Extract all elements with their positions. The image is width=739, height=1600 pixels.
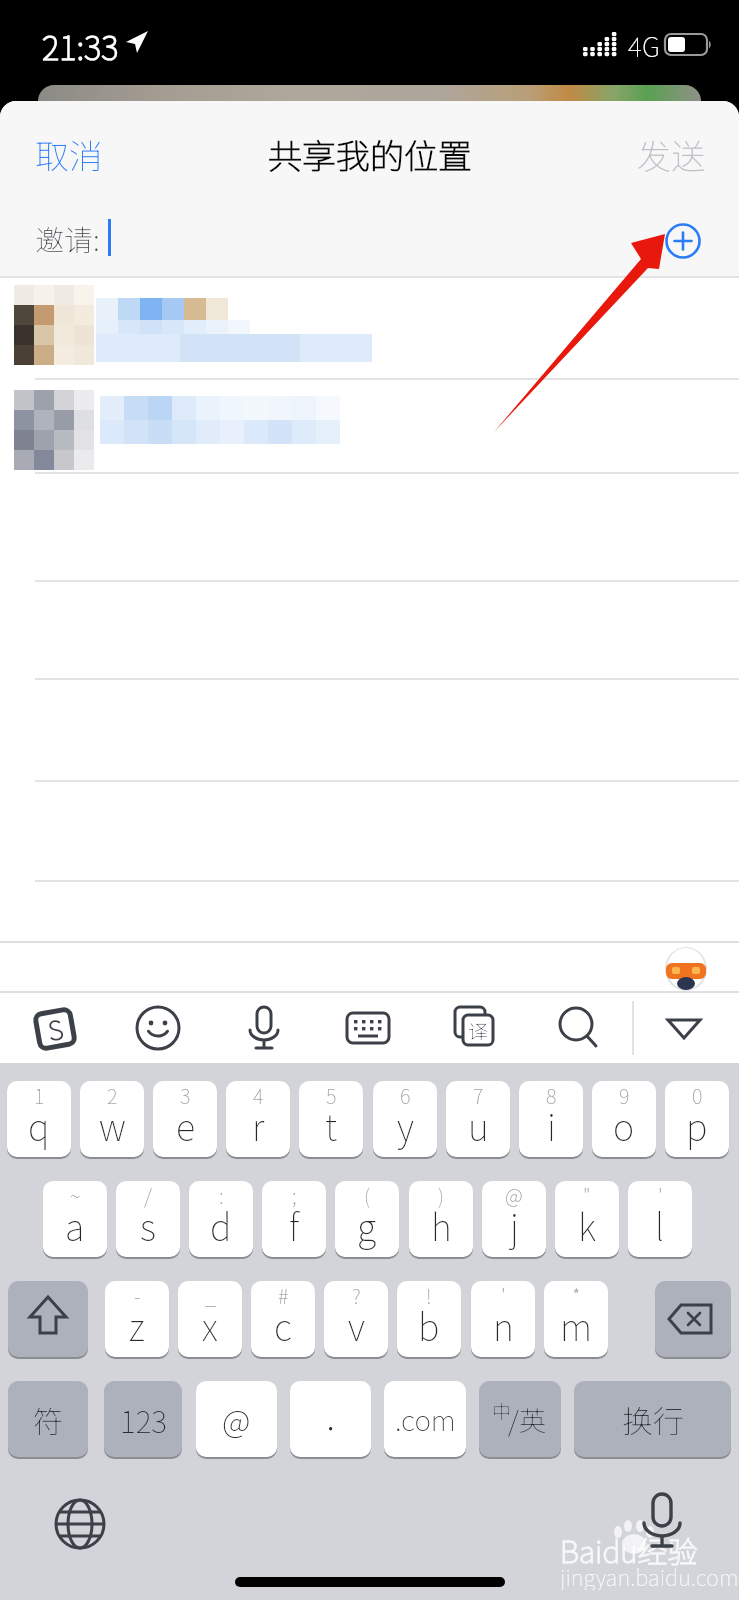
staticText: . xyxy=(326,1384,336,1442)
staticText: p xyxy=(686,1099,708,1151)
staticText: 7 xyxy=(473,1081,484,1110)
button[interactable]: 2 xyxy=(80,1081,144,1157)
button[interactable]: @ xyxy=(196,1381,277,1457)
staticText: 取消 xyxy=(35,130,103,178)
staticText: 1 xyxy=(34,1081,45,1110)
staticText: ; xyxy=(292,1181,297,1210)
button[interactable]: 符 xyxy=(8,1381,88,1457)
staticText: z xyxy=(129,1299,145,1351)
button[interactable]: 8 xyxy=(519,1081,583,1157)
button[interactable]: - xyxy=(105,1281,169,1357)
staticText: a xyxy=(65,1199,85,1251)
staticText: h xyxy=(431,1199,452,1251)
staticText: / xyxy=(144,1181,152,1210)
staticText: c xyxy=(274,1299,292,1351)
staticText: ~ xyxy=(70,1181,81,1210)
button[interactable]: 取消 xyxy=(35,130,145,178)
staticText: 0 xyxy=(692,1081,703,1110)
button[interactable]: 0 xyxy=(665,1081,729,1157)
button[interactable] xyxy=(14,385,739,475)
staticText: 邀请: xyxy=(35,217,100,259)
button[interactable] xyxy=(14,285,739,377)
staticText: u xyxy=(468,1099,489,1151)
staticText: ) xyxy=(438,1181,444,1210)
button[interactable]: 6 xyxy=(373,1081,437,1157)
staticText: ' xyxy=(501,1281,506,1310)
staticText: y xyxy=(397,1099,414,1151)
button[interactable]: ! xyxy=(397,1281,461,1357)
staticText: 译 xyxy=(468,1016,488,1045)
button[interactable] xyxy=(236,1000,292,1056)
button[interactable] xyxy=(8,1281,88,1357)
button[interactable]: 7 xyxy=(446,1081,510,1157)
button[interactable]: / xyxy=(116,1181,180,1257)
button[interactable]: ( xyxy=(335,1181,399,1257)
staticText: 换行 xyxy=(622,1397,684,1442)
button[interactable]: 5 xyxy=(299,1081,363,1157)
button[interactable]: ; xyxy=(262,1181,326,1257)
button[interactable] xyxy=(550,1000,606,1056)
button[interactable]: # xyxy=(251,1281,315,1357)
button[interactable]: 9 xyxy=(592,1081,656,1157)
staticText: w xyxy=(99,1099,126,1151)
button[interactable] xyxy=(50,1494,110,1554)
staticText: 4G xyxy=(628,26,660,62)
button[interactable]: 换行 xyxy=(574,1381,731,1457)
button[interactable]: : xyxy=(189,1181,253,1257)
staticText: 3 xyxy=(180,1081,191,1110)
staticText: f xyxy=(289,1199,300,1251)
button[interactable] xyxy=(630,1488,694,1558)
staticText: s xyxy=(140,1199,156,1251)
staticText: 6 xyxy=(400,1081,411,1110)
button[interactable]: ' xyxy=(628,1181,692,1257)
staticText: e xyxy=(176,1099,195,1151)
button[interactable]: " xyxy=(555,1181,619,1257)
button[interactable]: 译 xyxy=(446,1000,502,1056)
button[interactable] xyxy=(340,1000,396,1056)
staticText: t xyxy=(325,1099,338,1151)
staticText: 5 xyxy=(326,1081,337,1110)
button[interactable]: 4 xyxy=(226,1081,290,1157)
staticText: d xyxy=(210,1199,232,1251)
button[interactable] xyxy=(655,1281,731,1357)
staticText: /英 xyxy=(508,1400,546,1439)
button[interactable]: S xyxy=(28,1003,82,1055)
staticText: " xyxy=(583,1181,591,1210)
staticText: g xyxy=(357,1199,377,1251)
button[interactable]: . xyxy=(290,1381,371,1457)
button[interactable] xyxy=(664,946,708,990)
staticText: q xyxy=(28,1099,50,1151)
staticText: 8 xyxy=(546,1081,557,1110)
staticText: 2 xyxy=(107,1081,118,1110)
button[interactable]: 发送 xyxy=(560,130,705,178)
staticText: v xyxy=(348,1299,365,1351)
staticText: - xyxy=(134,1281,141,1310)
button[interactable]: ? xyxy=(324,1281,388,1357)
staticText: * xyxy=(572,1281,581,1310)
staticText: _ xyxy=(205,1281,216,1310)
button[interactable]: @ xyxy=(482,1181,546,1257)
staticText: 9 xyxy=(619,1081,630,1110)
button[interactable]: * xyxy=(544,1281,608,1357)
button[interactable] xyxy=(664,222,702,260)
button[interactable]: 3 xyxy=(153,1081,217,1157)
staticText: m xyxy=(560,1299,593,1351)
staticText: Baidu经验 xyxy=(560,1528,698,1568)
button[interactable]: ) xyxy=(409,1181,473,1257)
staticText: 21:33 xyxy=(42,22,119,66)
button[interactable]: 123 xyxy=(104,1381,182,1457)
staticText: j xyxy=(510,1199,519,1251)
button[interactable]: _ xyxy=(178,1281,242,1357)
staticText: 中 xyxy=(492,1397,512,1425)
button[interactable] xyxy=(130,1000,186,1056)
button[interactable]: 中 xyxy=(479,1381,561,1457)
staticText: # xyxy=(278,1281,289,1310)
button[interactable]: 1 xyxy=(7,1081,71,1157)
staticText: 共享我的位置 xyxy=(268,130,472,178)
staticText: r xyxy=(252,1099,265,1151)
button[interactable]: .com xyxy=(384,1381,466,1457)
button[interactable]: ' xyxy=(471,1281,535,1357)
staticText: ? xyxy=(352,1281,361,1310)
button[interactable]: ~ xyxy=(43,1181,107,1257)
button[interactable] xyxy=(660,1008,712,1050)
